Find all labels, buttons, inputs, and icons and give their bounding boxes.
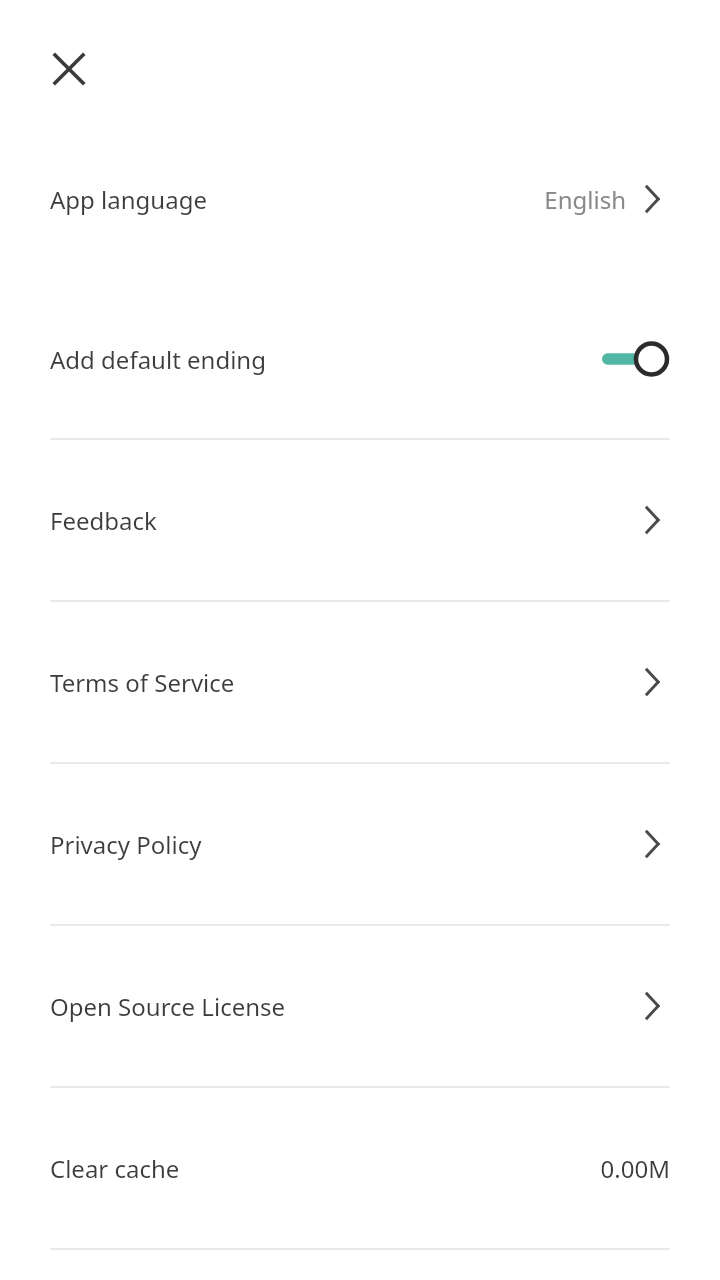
button[interactable]: App language [0,158,720,240]
button[interactable]: Terms of Service [0,602,720,762]
staticText: English [544,183,626,216]
button[interactable]: Close [40,40,98,98]
staticText: App language [50,183,207,216]
staticText: Add default ending [50,343,266,376]
staticText: Clear cache [50,1152,180,1185]
button[interactable]: Feedback [0,440,720,600]
staticText: Feedback [50,504,157,537]
staticText: Privacy Policy [50,828,202,861]
button[interactable]: Clear cache [0,1088,720,1248]
button[interactable]: Open Source License [0,926,720,1086]
button[interactable]: Add default ending [0,318,720,400]
staticText: Terms of Service [50,666,235,699]
other: Add default ending toggle [602,337,670,381]
staticText: 0.00M [600,1152,670,1185]
button[interactable]: Privacy Policy [0,764,720,924]
staticText: Open Source License [50,990,286,1023]
